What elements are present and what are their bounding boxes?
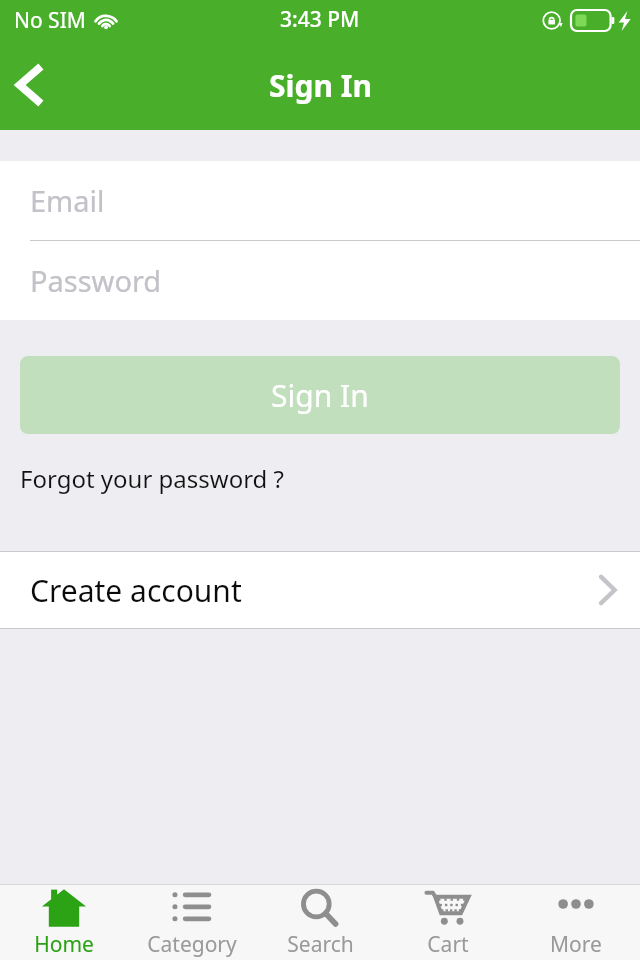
button[interactable]: Sign In xyxy=(20,356,620,434)
staticText: Category xyxy=(147,930,237,959)
staticText: Create account xyxy=(30,570,242,611)
button[interactable]: Create account xyxy=(0,552,640,628)
staticText: Forgot your password ? xyxy=(20,462,285,495)
button[interactable]: Back xyxy=(0,40,72,130)
button[interactable]: Search xyxy=(256,885,384,960)
button[interactable]: Email xyxy=(0,161,640,240)
button[interactable]: More xyxy=(512,885,640,960)
button[interactable]: Cart xyxy=(384,885,512,960)
staticText: Sign In xyxy=(269,65,372,106)
staticText: More xyxy=(550,930,602,959)
button[interactable]: Home xyxy=(0,885,128,960)
staticText: Home xyxy=(34,930,94,959)
button[interactable]: Category xyxy=(128,885,256,960)
button[interactable]: Password xyxy=(0,241,640,320)
staticText: Sign In xyxy=(271,375,369,416)
button[interactable]: Forgot your password ? xyxy=(0,461,640,495)
staticText: Search xyxy=(287,930,354,959)
staticText: Password xyxy=(30,261,162,300)
staticText: No SIM xyxy=(14,6,86,35)
staticText: Cart xyxy=(427,930,469,959)
staticText: Email xyxy=(30,181,105,220)
staticText: 3:43 PM xyxy=(280,5,360,34)
